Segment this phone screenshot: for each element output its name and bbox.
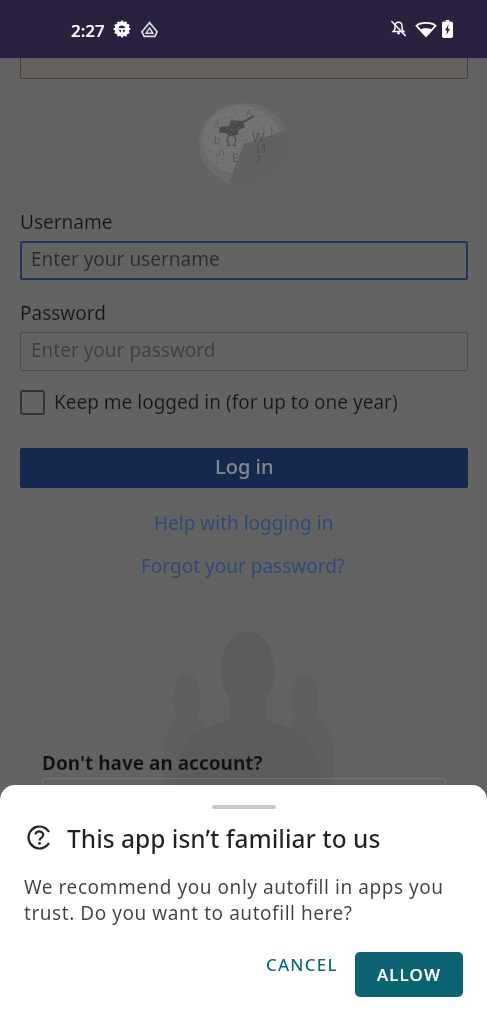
staticText: Forgot your password?: [141, 553, 346, 579]
staticText: Username: [20, 209, 113, 235]
staticText: Password: [20, 300, 106, 326]
staticText: CANCEL: [266, 953, 338, 976]
staticText: Log in: [215, 453, 274, 480]
staticText: We recommend you only autofill in apps y…: [24, 874, 454, 926]
staticText: 2:27: [71, 19, 105, 42]
button[interactable]: ALLOW: [355, 952, 463, 997]
button[interactable]: Log in: [20, 448, 468, 488]
staticText: ALLOW: [377, 963, 442, 986]
staticText: Don't have an account?: [42, 750, 263, 776]
button[interactable]: CANCEL: [264, 945, 340, 984]
button[interactable]: Keep me logged in (for up to one year): [20, 389, 398, 415]
staticText: Keep me logged in (for up to one year): [54, 389, 398, 415]
staticText: Enter your username: [31, 246, 220, 272]
button[interactable]: Forgot your password?: [141, 553, 346, 579]
staticText: This app isn’t familiar to us: [67, 822, 381, 855]
button[interactable]: Help with logging in: [154, 510, 334, 536]
staticText: Enter your password: [31, 337, 216, 363]
staticText: Help with logging in: [154, 510, 334, 536]
